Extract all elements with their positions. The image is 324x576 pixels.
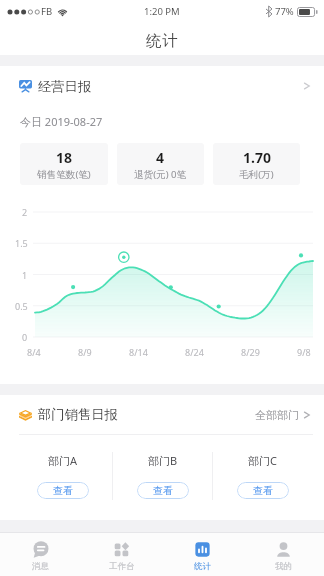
staticText: 2 [22, 206, 28, 218]
button[interactable]: 18 [20, 143, 108, 185]
staticText: 工作台 [109, 561, 135, 572]
staticText: 统计 [194, 561, 211, 572]
staticText: 部门销售日报 [38, 406, 118, 423]
button[interactable]: 工作台 [81, 533, 162, 576]
staticText: 77% [275, 5, 294, 18]
staticText: 部门A [48, 453, 78, 468]
staticText: 1:20 PM [144, 5, 180, 18]
staticText: 部门B [148, 453, 178, 468]
staticText: 18 [56, 148, 73, 167]
staticText: 部门C [248, 453, 277, 468]
staticText: 1.70 [243, 148, 271, 167]
staticText: 8/29 [241, 346, 260, 358]
staticText: 全部部门 [255, 408, 299, 422]
staticText: 8/14 [129, 346, 148, 358]
staticText: 经营日报 [38, 78, 92, 95]
staticText: FB [41, 5, 53, 18]
button[interactable]: 我的 [243, 533, 324, 576]
button[interactable]: 经营日报 [0, 66, 324, 106]
button[interactable]: 查看 [237, 482, 289, 499]
staticText: 查看 [153, 484, 173, 497]
staticText: 退货(元) 0笔 [134, 168, 187, 181]
button[interactable]: 查看 [37, 482, 89, 499]
other: More [302, 407, 312, 423]
staticText: 0 [22, 331, 28, 343]
button[interactable]: 消息 [0, 533, 81, 576]
button[interactable]: 部门销售日报 [0, 395, 324, 434]
staticText: 8/9 [78, 346, 92, 358]
staticText: 查看 [253, 484, 273, 497]
staticText: 0.5 [15, 300, 28, 312]
staticText: 销售笔数(笔) [37, 168, 91, 181]
button[interactable]: 统计 [162, 533, 243, 576]
staticText: 今日 2019-08-27 [20, 114, 103, 129]
staticText: 我的 [275, 561, 292, 572]
button[interactable]: 查看 [137, 482, 189, 499]
staticText: 毛利(万) [239, 168, 274, 181]
staticText: 1 [22, 269, 28, 281]
staticText: 8/24 [185, 346, 204, 358]
staticText: 查看 [53, 484, 73, 497]
staticText: 9/8 [297, 346, 311, 358]
staticText: 统计 [146, 31, 179, 51]
staticText: 消息 [32, 561, 49, 572]
staticText: 1.5 [15, 237, 28, 249]
other: More [302, 78, 312, 94]
button[interactable]: 1.70 [213, 143, 300, 185]
staticText: 8/4 [27, 346, 41, 358]
staticText: 4 [156, 148, 165, 167]
button[interactable]: 4 [117, 143, 204, 185]
